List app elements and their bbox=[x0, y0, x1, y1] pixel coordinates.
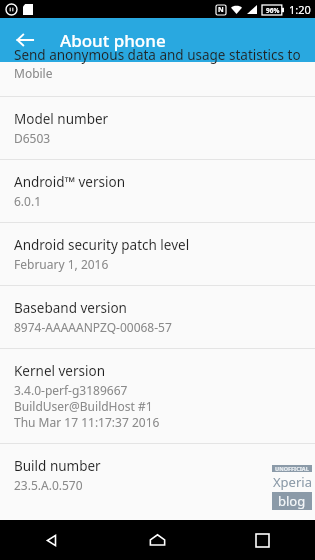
staticText: Thu Mar 17 11:17:37 2016 bbox=[14, 414, 160, 430]
staticText: 3.4.0-perf-g3189667 bbox=[14, 382, 128, 398]
staticText: Model number bbox=[14, 110, 109, 128]
button[interactable]: Back bbox=[0, 520, 105, 560]
button[interactable]: Android security patch level bbox=[0, 223, 315, 285]
staticText: Build number bbox=[14, 457, 101, 475]
staticText: About phone bbox=[60, 29, 166, 52]
button[interactable]: Model number bbox=[0, 97, 315, 159]
button[interactable]: Build number bbox=[0, 444, 315, 506]
button[interactable]: Send anonymous data and usage statistics… bbox=[0, 62, 315, 96]
staticText: Android™ version bbox=[14, 173, 125, 191]
staticText: Baseband version bbox=[14, 299, 127, 317]
staticText: BuildUser@BuildHost #1 bbox=[14, 398, 153, 414]
staticText: 6.0.1 bbox=[14, 193, 42, 209]
button[interactable]: Android™ version bbox=[0, 160, 315, 222]
staticText: February 1, 2016 bbox=[14, 256, 109, 272]
button[interactable]: Back bbox=[8, 23, 42, 57]
staticText: UNOFFICIAL bbox=[275, 465, 309, 472]
button[interactable]: Kernel version bbox=[0, 349, 315, 443]
staticText: Kernel version bbox=[14, 362, 106, 380]
staticText: 23.5.A.0.570 bbox=[14, 477, 83, 493]
staticText: blog bbox=[278, 492, 306, 510]
button[interactable]: Recent apps bbox=[210, 520, 315, 560]
staticText: N bbox=[218, 5, 224, 15]
staticText: Mobile bbox=[14, 65, 53, 80]
button[interactable]: Baseband version bbox=[0, 286, 315, 348]
staticText: Xperia bbox=[273, 473, 312, 491]
staticText: 1:20 bbox=[289, 2, 311, 17]
staticText: Android security patch level bbox=[14, 236, 190, 254]
staticText: 96% bbox=[266, 6, 280, 15]
staticText: D6503 bbox=[14, 130, 51, 146]
button[interactable]: Home bbox=[105, 520, 210, 560]
staticText: Send anonymous data and usage statistics… bbox=[14, 46, 301, 64]
staticText: 8974-AAAAANPZQ-00068-57 bbox=[14, 319, 172, 335]
